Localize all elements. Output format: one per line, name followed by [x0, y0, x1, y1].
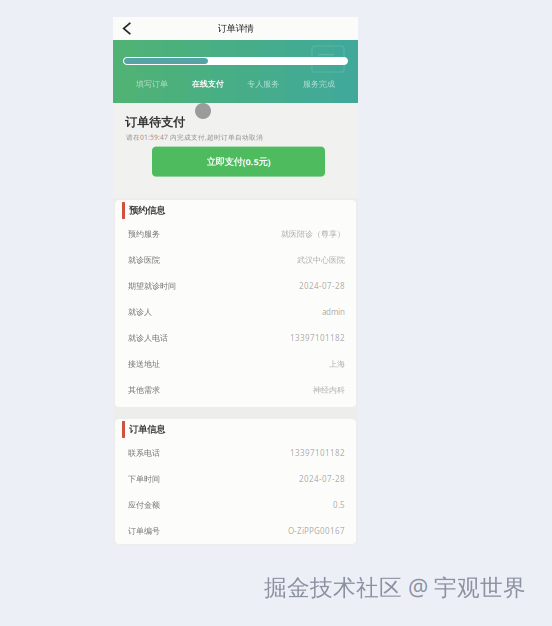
staticText: 掘金技术社区 @ 宇观世界 [264, 572, 526, 602]
staticText: 神经内科 [313, 385, 345, 395]
staticText: 专人服务 [247, 79, 279, 89]
staticText: 2024-07-28 [299, 474, 345, 484]
staticText: 13397101182 [290, 448, 345, 458]
staticText: 就诊人 [128, 307, 152, 317]
staticText: O-ZiPPG00167 [288, 526, 345, 536]
staticText: 预约服务 [128, 229, 160, 239]
staticText: 请在01:59:47 内完成支付,超时订单自动取消 [126, 133, 263, 142]
staticText: 0.5 [333, 500, 345, 510]
staticText: 就诊人电话 [128, 333, 168, 343]
staticText: 接送地址 [128, 359, 160, 369]
staticText: 就医陪诊（尊享） [281, 229, 345, 239]
staticText: 立即支付(0.5元) [206, 155, 270, 168]
staticText: 联系电话 [128, 448, 160, 458]
staticText: 订单编号 [128, 526, 160, 536]
button[interactable]: 返回 [117, 17, 137, 40]
staticText: 2024-07-28 [299, 281, 345, 291]
staticText: 在线支付 [192, 79, 224, 89]
staticText: 订单待支付 [125, 115, 185, 130]
staticText: 填写订单 [136, 79, 168, 89]
staticText: 其他需求 [128, 385, 160, 395]
staticText: 订单详情 [217, 23, 253, 34]
staticText: 期望就诊时间 [128, 281, 176, 291]
staticText: admin [322, 307, 345, 317]
staticText: 上海 [329, 359, 345, 369]
staticText: 就诊医院 [128, 255, 160, 265]
button[interactable]: 立即支付(0.5元) [152, 147, 325, 177]
staticText: 预约信息 [129, 205, 165, 216]
staticText: 13397101182 [290, 333, 345, 343]
staticText: 武汉中心医院 [297, 255, 345, 265]
staticText: 应付金额 [128, 500, 160, 510]
staticText: 服务完成 [303, 79, 335, 89]
staticText: 订单信息 [129, 424, 165, 435]
staticText: 下单时间 [128, 474, 160, 484]
